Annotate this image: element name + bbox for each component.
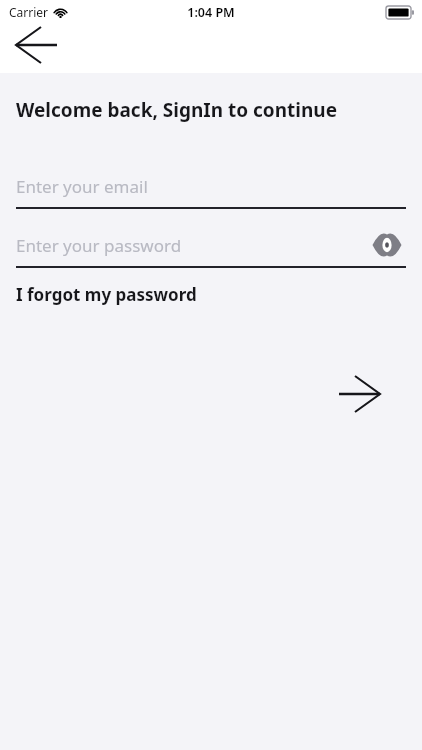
- button[interactable]: I forgot my password: [16, 279, 197, 310]
- staticText: Enter your email: [16, 175, 148, 198]
- staticText: Enter your password: [16, 234, 182, 257]
- button[interactable]: Enter your email: [16, 169, 406, 209]
- button[interactable]: Enter your password: [16, 228, 406, 268]
- staticText: I forgot my password: [16, 283, 197, 306]
- button[interactable]: Back: [8, 20, 66, 70]
- staticText: Welcome back, SignIn to continue: [16, 97, 338, 123]
- staticText: 1:04 PM: [187, 4, 235, 21]
- button[interactable]: Continue: [336, 370, 390, 418]
- button[interactable]: Show password: [368, 228, 406, 262]
- staticText: Carrier: [9, 4, 49, 20]
